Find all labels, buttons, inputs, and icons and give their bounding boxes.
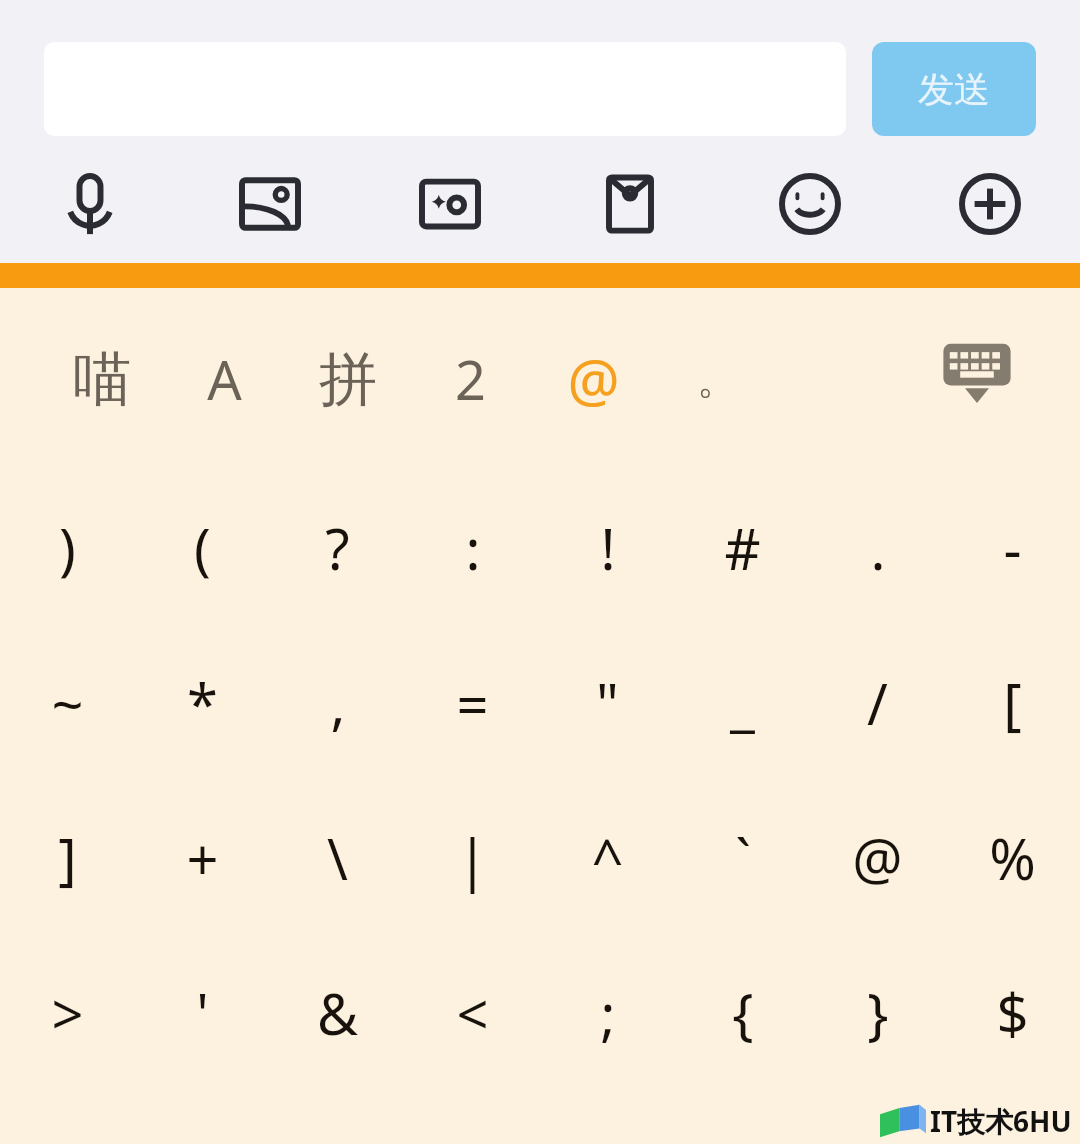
button[interactable]: . <box>810 470 945 625</box>
button[interactable]: Voice input <box>0 158 180 250</box>
staticText: $ <box>996 975 1029 1051</box>
staticText: 。 <box>697 354 737 404</box>
button[interactable]: { <box>675 935 810 1090</box>
button[interactable]: 发送 <box>872 42 1036 136</box>
button[interactable]: Emoji <box>720 158 900 250</box>
button[interactable]: Photo <box>180 158 360 250</box>
button[interactable]: | <box>405 780 540 935</box>
button[interactable]: ^ <box>540 780 675 935</box>
staticText: ; <box>600 975 616 1051</box>
button[interactable]: A <box>163 288 286 470</box>
button[interactable]: } <box>810 935 945 1090</box>
staticText: @ <box>852 820 903 896</box>
button[interactable]: + <box>135 780 270 935</box>
staticText: . <box>870 510 886 586</box>
button[interactable]: 2 <box>409 288 532 470</box>
button[interactable]: ) <box>0 470 135 625</box>
staticText: 喵 <box>73 343 131 416</box>
staticText: + <box>186 820 219 896</box>
button[interactable]: , <box>270 625 405 780</box>
staticText: { <box>732 975 754 1051</box>
staticText: # <box>724 510 761 586</box>
button[interactable]: @ <box>532 288 655 470</box>
button[interactable]: & <box>270 935 405 1090</box>
button[interactable]: / <box>810 625 945 780</box>
button[interactable]: ] <box>0 780 135 935</box>
staticText: ] <box>58 820 77 896</box>
staticText: : <box>465 510 481 586</box>
staticText: @ <box>567 340 620 419</box>
button[interactable]: = <box>405 625 540 780</box>
staticText: 拼 <box>319 343 377 416</box>
staticText: / <box>867 665 888 741</box>
staticText: 发送 <box>918 67 990 112</box>
button[interactable]: \ <box>270 780 405 935</box>
button[interactable]: ( <box>135 470 270 625</box>
button[interactable]: % <box>945 780 1080 935</box>
staticText: } <box>867 975 889 1051</box>
staticText: [ <box>1003 665 1022 741</box>
button[interactable]: ` <box>675 780 810 935</box>
button[interactable]: @ <box>810 780 945 935</box>
button[interactable]: * <box>135 625 270 780</box>
button[interactable]: < <box>405 935 540 1090</box>
button[interactable]: Hide keyboard <box>932 334 1022 424</box>
button[interactable]: ' <box>135 935 270 1090</box>
button[interactable]: : <box>405 470 540 625</box>
staticText: A <box>207 342 242 416</box>
staticText: & <box>317 975 358 1051</box>
staticText: _ <box>730 665 755 741</box>
button[interactable]: - <box>945 470 1080 625</box>
staticText: ' <box>196 975 209 1051</box>
button[interactable]: Red packet <box>540 158 720 250</box>
staticText: ) <box>59 510 76 586</box>
button[interactable]: _ <box>675 625 810 780</box>
button[interactable]: > <box>0 935 135 1090</box>
staticText: 2 <box>455 342 486 416</box>
staticText: % <box>989 820 1036 896</box>
staticText: - <box>1003 510 1022 586</box>
button[interactable]: Effects <box>360 158 540 250</box>
button[interactable]: ; <box>540 935 675 1090</box>
staticText: * <box>187 665 218 741</box>
staticText: ! <box>600 510 616 586</box>
staticText: ` <box>735 820 751 896</box>
button[interactable]: More <box>900 158 1080 250</box>
button[interactable]: [ <box>945 625 1080 780</box>
button[interactable]: ~ <box>0 625 135 780</box>
staticText: ? <box>325 510 350 586</box>
button[interactable]: # <box>675 470 810 625</box>
staticText: ~ <box>51 665 84 741</box>
button[interactable]: 。 <box>655 288 778 470</box>
button[interactable]: ? <box>270 470 405 625</box>
button[interactable]: " <box>540 625 675 780</box>
button[interactable]: $ <box>945 935 1080 1090</box>
staticText: > <box>51 975 84 1051</box>
staticText: = <box>456 665 489 741</box>
staticText: \ <box>327 820 348 896</box>
button[interactable]: 喵 <box>40 288 163 470</box>
staticText: IT技术6HU <box>930 1102 1072 1140</box>
staticText: < <box>456 975 489 1051</box>
staticText: ( <box>194 510 211 586</box>
staticText: " <box>596 665 619 741</box>
staticText: ^ <box>591 820 624 896</box>
button[interactable]: 拼 <box>286 288 409 470</box>
staticText: , <box>330 665 346 741</box>
button[interactable]: ! <box>540 470 675 625</box>
staticText: | <box>457 820 488 896</box>
